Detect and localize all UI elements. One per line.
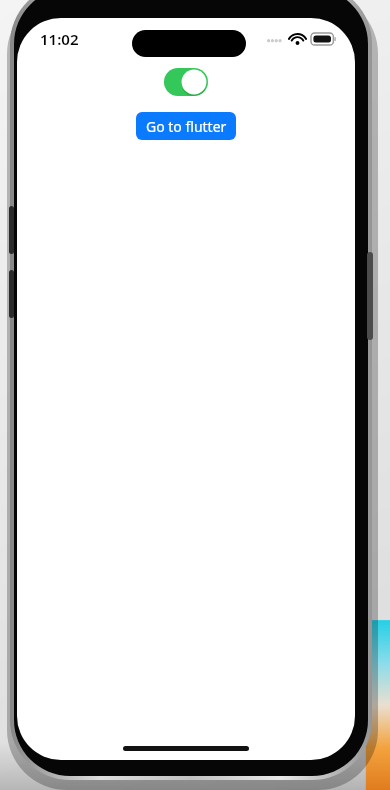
button[interactable]: Toggle switch, on — [164, 68, 208, 96]
other: Wi-Fi — [289, 33, 306, 45]
button[interactable]: Go to flutter — [136, 112, 236, 140]
staticText: 11:02 — [40, 29, 79, 49]
staticText: Go to flutter — [146, 117, 227, 136]
other: Battery — [311, 33, 336, 45]
